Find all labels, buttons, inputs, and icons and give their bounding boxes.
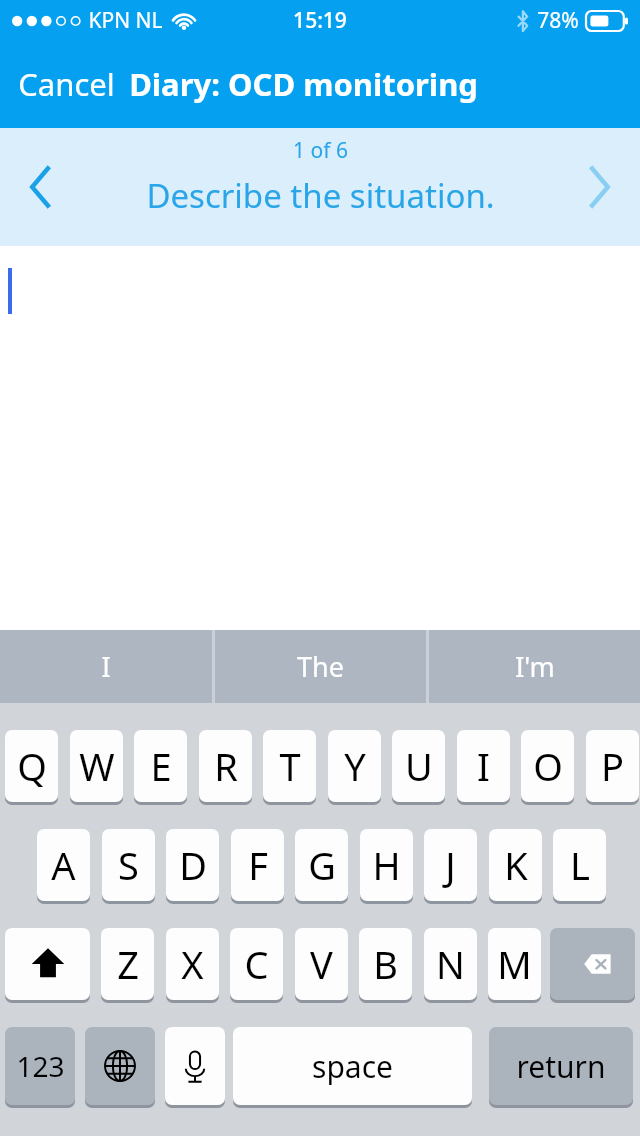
button[interactable]: S: [102, 829, 155, 901]
button[interactable]: space: [233, 1027, 472, 1105]
staticText: return: [516, 1046, 606, 1087]
button[interactable]: Previous question: [4, 144, 78, 230]
button[interactable]: R: [199, 730, 252, 802]
button[interactable]: O: [521, 730, 574, 802]
staticText: H: [372, 839, 401, 891]
staticText: 78%: [537, 6, 579, 35]
staticText: A: [51, 839, 76, 891]
staticText: J: [445, 839, 456, 891]
button[interactable]: Dictate: [165, 1027, 225, 1105]
staticText: Z: [117, 938, 139, 990]
staticText: N: [436, 938, 465, 990]
button[interactable]: return: [489, 1027, 633, 1105]
staticText: 15:19: [293, 6, 347, 35]
staticText: The: [297, 648, 344, 685]
button[interactable]: N: [424, 928, 477, 1000]
staticText: O: [533, 740, 563, 792]
button[interactable]: I: [457, 730, 510, 802]
staticText: space: [312, 1046, 393, 1087]
button[interactable]: Q: [5, 730, 58, 802]
staticText: R: [214, 740, 238, 792]
staticText: Y: [344, 740, 366, 792]
staticText: V: [310, 938, 333, 990]
button[interactable]: B: [359, 928, 412, 1000]
button[interactable]: I: [0, 630, 212, 703]
staticText: Cancel: [18, 63, 115, 105]
button[interactable]: C: [230, 928, 283, 1000]
button[interactable]: P: [586, 730, 639, 802]
staticText: U: [405, 740, 433, 792]
staticText: I: [101, 648, 111, 685]
button[interactable]: Change keyboard: [85, 1027, 155, 1105]
button[interactable]: X: [166, 928, 219, 1000]
button[interactable]: D: [166, 829, 219, 901]
staticText: Diary: OCD monitoring: [129, 63, 478, 105]
staticText: 1 of 6: [293, 136, 348, 165]
button[interactable]: A: [37, 829, 90, 901]
staticText: Describe the situation.: [146, 173, 495, 218]
staticText: B: [373, 938, 398, 990]
staticText: K: [504, 839, 528, 891]
button[interactable]: Cancel: [0, 53, 121, 115]
button[interactable]: F: [231, 829, 284, 901]
button[interactable]: Next question: [562, 144, 636, 230]
button[interactable]: K: [489, 829, 542, 901]
staticText: T: [279, 740, 301, 792]
staticText: I: [477, 740, 490, 792]
staticText: C: [244, 938, 269, 990]
button[interactable]: L: [553, 829, 606, 901]
staticText: P: [601, 740, 624, 792]
button[interactable]: Z: [101, 928, 154, 1000]
button[interactable]: V: [295, 928, 348, 1000]
staticText: E: [150, 740, 172, 792]
staticText: 123: [16, 1047, 65, 1085]
staticText: Q: [17, 740, 47, 792]
staticText: M: [497, 938, 532, 990]
button[interactable]: Backspace: [550, 928, 635, 1000]
button[interactable]: 123: [5, 1027, 75, 1105]
staticText: L: [570, 839, 590, 891]
button[interactable]: E: [134, 730, 187, 802]
staticText: S: [118, 839, 139, 891]
staticText: D: [179, 839, 207, 891]
staticText: W: [79, 740, 115, 792]
button[interactable]: T: [263, 730, 316, 802]
staticText: F: [248, 839, 268, 891]
staticText: I'm: [515, 648, 555, 685]
button[interactable]: W: [70, 730, 123, 802]
button[interactable]: U: [392, 730, 445, 802]
button[interactable]: Shift: [5, 928, 90, 1000]
button[interactable]: H: [360, 829, 413, 901]
staticText: X: [181, 938, 204, 990]
staticText: G: [308, 839, 336, 891]
button[interactable]: I'm: [429, 630, 640, 703]
button[interactable]: Y: [328, 730, 381, 802]
button[interactable]: G: [295, 829, 348, 901]
staticText: KPN NL: [88, 6, 163, 35]
button[interactable]: The: [215, 630, 426, 703]
button[interactable]: M: [488, 928, 541, 1000]
button[interactable]: J: [424, 829, 477, 901]
